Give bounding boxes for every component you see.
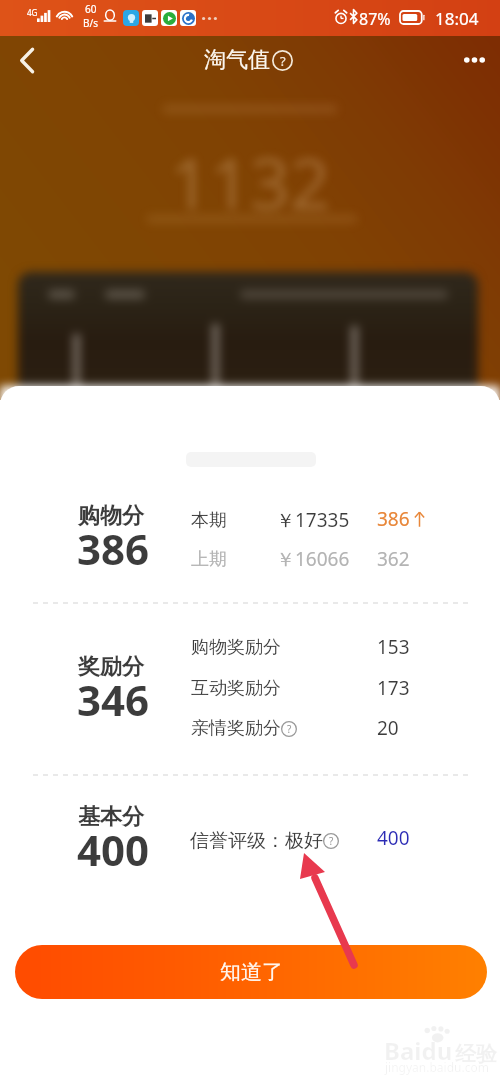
staticText: ￥16066 xyxy=(276,546,350,572)
staticText: 18:04 xyxy=(435,7,479,30)
staticText: 4G xyxy=(27,7,38,18)
staticText: jingyan.baidu.com xyxy=(385,1059,489,1075)
button[interactable]: More options xyxy=(449,36,500,84)
staticText: 400 xyxy=(377,825,410,851)
staticText: 386 xyxy=(377,506,410,532)
staticText: 奖励分 xyxy=(78,653,144,681)
staticText: 362 xyxy=(377,546,410,572)
staticText: ￥17335 xyxy=(276,507,350,533)
button[interactable]: 知道了 xyxy=(15,945,487,999)
staticText: 互动奖励分 xyxy=(191,677,281,700)
staticText: 1132 xyxy=(170,134,331,229)
staticText: 信誉评级：极好 xyxy=(190,829,323,853)
staticText: 知道了 xyxy=(220,959,283,985)
button[interactable]: Back xyxy=(0,36,54,84)
staticText: 购物分 xyxy=(78,502,144,530)
staticText: 购物奖励分 xyxy=(191,636,281,659)
staticText: 60 xyxy=(85,2,97,16)
staticText: 153 xyxy=(377,634,410,660)
staticText: ? xyxy=(329,834,334,848)
staticText: 400 xyxy=(77,821,150,878)
staticText: 经验 xyxy=(455,1041,497,1067)
staticText: 386 xyxy=(77,520,150,577)
staticText: Baidu xyxy=(384,1034,453,1067)
staticText: 基本分 xyxy=(78,803,144,831)
staticText: 淘气值 xyxy=(204,46,270,74)
staticText: 173 xyxy=(377,675,410,701)
staticText: 本期 xyxy=(191,509,227,532)
staticText: ? xyxy=(287,722,292,736)
staticText: 87% xyxy=(359,8,391,30)
staticText: 346 xyxy=(77,671,150,728)
staticText: 20 xyxy=(377,715,399,741)
staticText: 亲情奖励分 xyxy=(191,717,281,740)
staticText: B/s xyxy=(83,16,99,30)
staticText: 上期 xyxy=(191,548,227,571)
staticText: ? xyxy=(280,52,286,70)
